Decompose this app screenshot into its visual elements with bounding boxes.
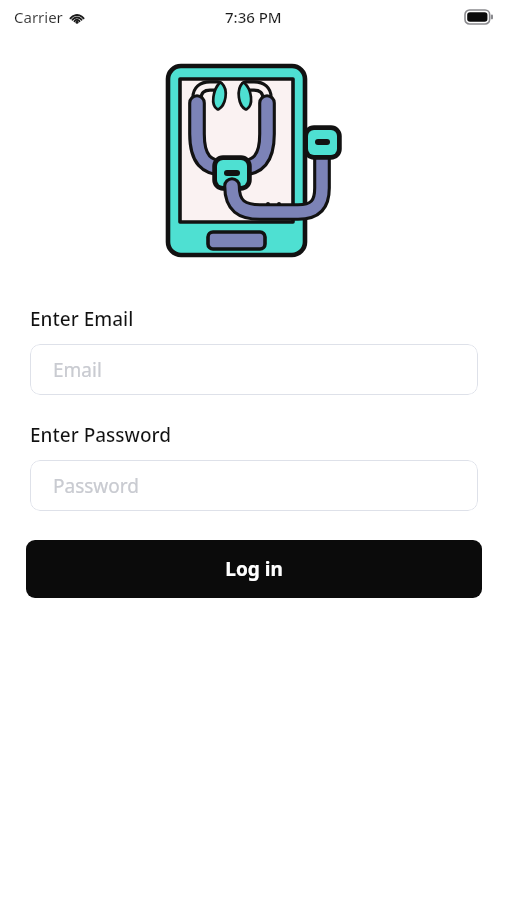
button[interactable]: Log in <box>26 540 482 598</box>
staticText: Log in <box>225 556 283 582</box>
staticText: Enter Email <box>30 306 134 332</box>
button[interactable]: Email <box>30 344 478 395</box>
staticText: 7:36 PM <box>225 7 282 27</box>
staticText: Email <box>53 357 102 383</box>
staticText: Enter Password <box>30 422 171 448</box>
staticText: Password <box>53 473 139 499</box>
button[interactable]: Password <box>30 460 478 511</box>
staticText: Carrier <box>14 7 63 27</box>
